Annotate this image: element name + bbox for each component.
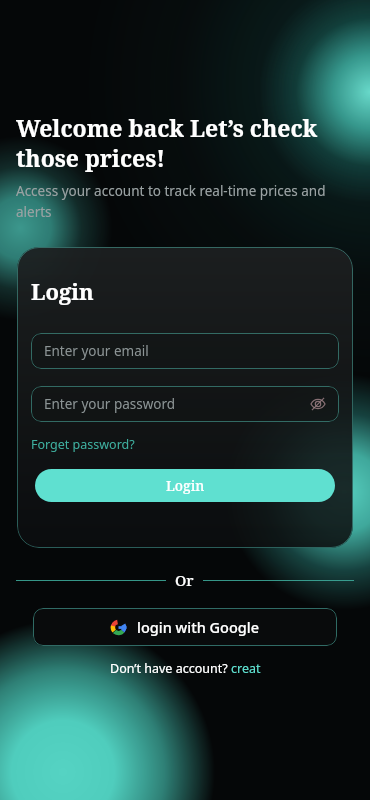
staticText: Don’t have account? (110, 660, 231, 677)
staticText: creat (231, 660, 261, 677)
staticText: Access your account to track real-time p… (16, 182, 352, 221)
staticText: Login (166, 476, 205, 495)
staticText: login with Google (137, 617, 260, 637)
button[interactable]: creat (231, 660, 261, 677)
staticText: Login (31, 276, 94, 306)
button[interactable]: Show password (307, 393, 329, 415)
button[interactable]: Enter your email (31, 333, 339, 369)
staticText: Or (175, 570, 194, 590)
staticText: Forget password? (31, 436, 135, 453)
staticText: Welcome back Let’s check those prices! (16, 112, 356, 173)
button[interactable]: login with Google (33, 608, 337, 646)
button[interactable]: Forget password? (31, 434, 135, 455)
staticText: Enter your password (44, 395, 176, 413)
button[interactable]: Enter your password (31, 386, 339, 422)
button[interactable]: Login (35, 469, 335, 502)
staticText: Enter your email (44, 342, 149, 360)
